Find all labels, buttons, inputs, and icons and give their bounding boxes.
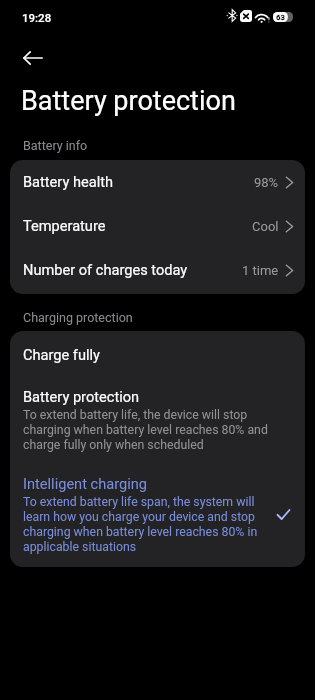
staticText: Intelligent charging [23, 475, 147, 493]
staticText: Charging protection [23, 310, 133, 325]
staticText: 19:28 [22, 11, 52, 25]
button[interactable]: Battery protection [10, 374, 305, 462]
staticText: Temperature [23, 217, 106, 235]
button[interactable]: Back [11, 36, 55, 80]
staticText: 1 time [242, 262, 279, 278]
button[interactable]: Intelligent charging [10, 462, 305, 567]
staticText: Battery info [23, 138, 88, 153]
staticText: Charge fully [23, 346, 100, 364]
staticText: To extend battery life, the device will … [23, 407, 285, 452]
staticText: Battery health [23, 173, 113, 191]
staticText: Number of charges today [23, 261, 188, 279]
staticText: To extend battery life span, the system … [23, 494, 263, 554]
button[interactable]: Temperature [10, 204, 305, 248]
button[interactable]: Battery health [10, 160, 305, 204]
button[interactable]: Charge fully [10, 331, 305, 374]
staticText: Cool [252, 218, 279, 234]
staticText: 98% [254, 174, 279, 190]
staticText: 63 [276, 13, 285, 22]
staticText: Battery protection [21, 85, 236, 117]
button[interactable]: Number of charges today [10, 248, 305, 292]
staticText: Battery protection [23, 388, 140, 406]
